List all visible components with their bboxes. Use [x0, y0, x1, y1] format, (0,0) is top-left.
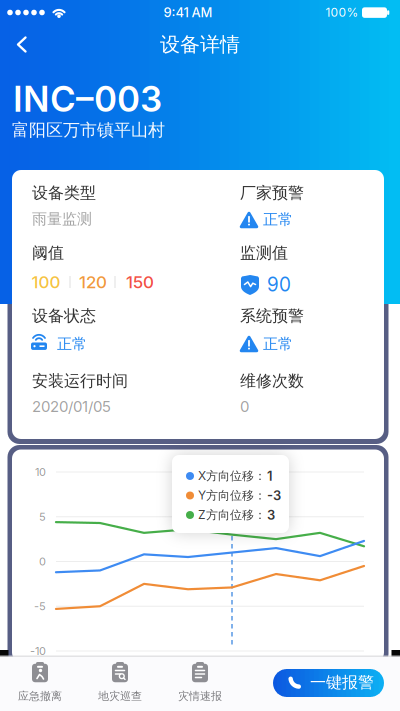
- staticText: 系统预警: [240, 306, 304, 326]
- staticText: 应急撤离: [18, 689, 62, 703]
- staticText: Y方向位移：: [198, 488, 266, 503]
- staticText: 设备详情: [160, 32, 240, 57]
- staticText: 0: [240, 398, 249, 415]
- staticText: 100%: [325, 5, 358, 20]
- staticText: 正常: [263, 335, 293, 353]
- staticText: 设备状态: [32, 306, 96, 326]
- staticText: -5: [34, 600, 46, 613]
- staticText: 灾情速报: [178, 689, 222, 703]
- staticText: 2020/01/05: [32, 398, 111, 415]
- staticText: 富阳区万市镇平山村: [12, 120, 165, 140]
- staticText: 90: [267, 273, 291, 296]
- staticText: 正常: [57, 335, 87, 353]
- staticText: 120: [79, 272, 107, 292]
- staticText: INC–003: [13, 78, 162, 120]
- staticText: -3: [267, 488, 281, 503]
- button[interactable]: 应急撤离: [12, 657, 68, 703]
- staticText: 厂家预警: [240, 183, 304, 203]
- staticText: 100: [31, 272, 60, 292]
- staticText: 3: [267, 507, 275, 523]
- staticText: 5: [39, 510, 46, 523]
- staticText: 雨量监测: [32, 210, 92, 228]
- staticText: 安装运行时间: [32, 371, 128, 391]
- staticText: X方向位移：: [198, 469, 266, 483]
- button[interactable]: [0, 22, 44, 66]
- staticText: -10: [30, 644, 46, 657]
- staticText: 正常: [263, 210, 293, 229]
- button[interactable]: 地灾巡查: [92, 657, 148, 703]
- button[interactable]: 灾情速报: [172, 657, 228, 703]
- staticText: 监测值: [240, 243, 288, 263]
- staticText: 0: [39, 555, 46, 568]
- staticText: 9:41 AM: [163, 5, 212, 20]
- staticText: 1: [267, 468, 272, 484]
- staticText: 10: [35, 465, 46, 478]
- staticText: 一键报警: [310, 673, 374, 692]
- staticText: Z方向位移：: [198, 508, 266, 522]
- staticText: 维修次数: [240, 371, 304, 391]
- staticText: 设备类型: [32, 183, 96, 203]
- button[interactable]: 一键报警: [273, 669, 384, 697]
- staticText: 150: [126, 272, 154, 292]
- staticText: 地灾巡查: [98, 689, 142, 703]
- staticText: 阈值: [32, 243, 64, 263]
